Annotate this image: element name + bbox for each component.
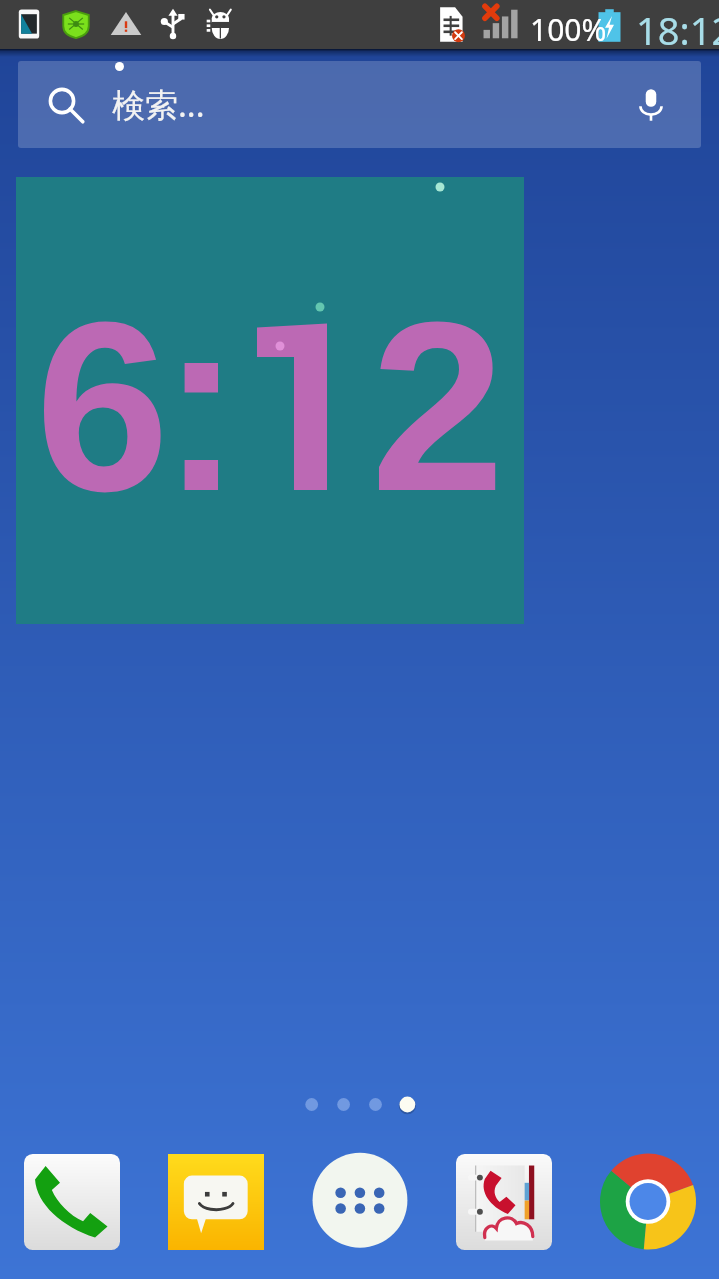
button[interactable]: Phone	[24, 1154, 120, 1250]
button[interactable]: Contacts	[456, 1154, 552, 1250]
button[interactable]: Chrome	[600, 1154, 696, 1250]
button[interactable]: Clock 6:12	[16, 177, 524, 624]
button[interactable]: Messages	[168, 1154, 264, 1250]
staticText: 検索...	[112, 82, 205, 127]
button[interactable]: 検索...	[18, 61, 701, 148]
button[interactable]: Apps	[312, 1154, 408, 1250]
button[interactable]: Page 4 of 4	[296, 1090, 424, 1120]
staticText: 18:12	[636, 4, 719, 53]
button[interactable]: Voice search	[629, 83, 673, 127]
staticText: 100%	[530, 9, 607, 50]
